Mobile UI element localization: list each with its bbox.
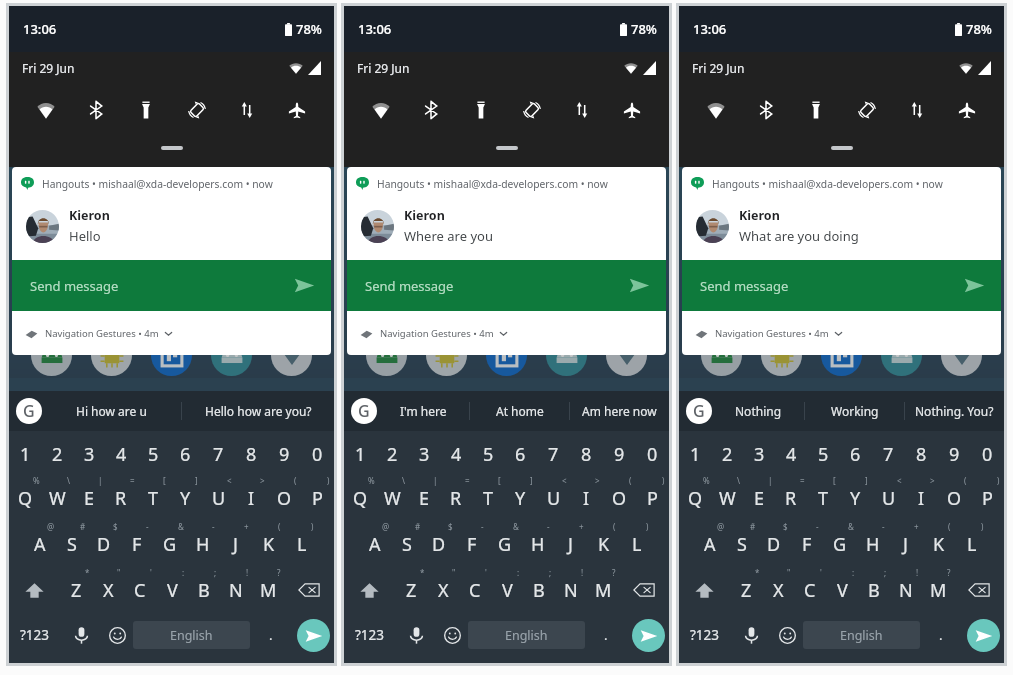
button[interactable]: Emoji [437,607,468,663]
button[interactable]: Auto-rotate [181,94,213,126]
button[interactable]: ) [971,469,1004,515]
button[interactable]: Bluetooth [750,94,782,126]
button[interactable]: ? [252,561,284,607]
button[interactable]: = [775,469,807,515]
button[interactable]: App shortcut [426,335,467,376]
button[interactable]: 3 [73,431,105,469]
button[interactable]: . [920,607,962,663]
button[interactable]: 1 [9,431,41,469]
button[interactable]: ] [504,469,537,515]
button[interactable]: 1 [679,431,711,469]
button[interactable]: Shift [9,561,60,607]
button[interactable]: English [468,621,585,649]
button[interactable]: 2 [711,431,743,469]
button[interactable]: Flashlight [465,94,497,126]
button[interactable]: & [153,515,186,561]
button[interactable]: \ [711,469,743,515]
button[interactable]: App shortcut [546,335,587,376]
button[interactable]: App shortcut [941,335,982,376]
button[interactable]: * [60,561,92,607]
button[interactable]: Google [686,398,712,424]
button[interactable]: ' [124,561,156,607]
button[interactable]: = [105,469,137,515]
button[interactable]: 5 [807,431,839,469]
button[interactable]: # [726,515,758,561]
button[interactable]: % [344,469,376,515]
button[interactable]: Bluetooth [80,94,112,126]
button[interactable]: [ [807,469,839,515]
button[interactable]: Auto-rotate [851,94,883,126]
button[interactable]: ; [523,561,555,607]
button[interactable]: 7 [872,431,905,469]
button[interactable]: ( [587,515,620,561]
button[interactable]: ] [839,469,872,515]
button[interactable]: 0 [636,431,669,469]
button[interactable]: Bluetooth [415,94,447,126]
button[interactable]: 8 [905,431,938,469]
button[interactable]: ( [922,515,955,561]
button[interactable]: < [872,469,905,515]
button[interactable]: Send message [347,260,666,311]
button[interactable]: # [391,515,423,561]
button[interactable]: - [186,515,219,561]
button[interactable]: App shortcut [821,335,862,376]
button[interactable]: ( [252,515,285,561]
button[interactable]: Mobile data [566,94,598,126]
button[interactable]: ' [794,561,826,607]
button[interactable]: 3 [743,431,775,469]
button[interactable]: ] [169,469,202,515]
button[interactable]: + [554,515,587,561]
button[interactable]: - [455,515,488,561]
button[interactable]: @ [359,515,391,561]
button[interactable]: * [395,561,427,607]
button[interactable]: Navigation Gestures • 4m [347,311,666,355]
button[interactable]: 4 [105,431,137,469]
button[interactable]: Shift [679,561,730,607]
button[interactable]: " [92,561,124,607]
button[interactable]: & [823,515,856,561]
button[interactable]: . [250,607,292,663]
button[interactable]: | [743,469,775,515]
button[interactable]: 1 [344,431,376,469]
button[interactable]: 7 [537,431,570,469]
button[interactable]: ? [587,561,619,607]
button[interactable]: 6 [169,431,202,469]
button[interactable]: Wi-Fi [700,94,732,126]
button[interactable]: Send message [12,260,331,311]
button[interactable]: Emoji [772,607,803,663]
button[interactable]: Backspace [284,561,334,607]
button[interactable]: " [427,561,459,607]
button[interactable]: > [235,469,268,515]
button[interactable]: Send message [682,260,1001,311]
button[interactable]: > [570,469,603,515]
button[interactable]: | [408,469,440,515]
button[interactable]: App shortcut [701,335,742,376]
button[interactable]: 6 [839,431,872,469]
button[interactable]: * [730,561,762,607]
button[interactable]: & [488,515,521,561]
button[interactable]: 8 [235,431,268,469]
button[interactable]: < [202,469,235,515]
button[interactable]: Hello how are you? [182,391,334,431]
button[interactable]: ?123 [679,607,730,663]
button[interactable]: App shortcut [761,335,802,376]
button[interactable]: : [826,561,858,607]
button[interactable]: \ [41,469,73,515]
button[interactable]: ?123 [9,607,60,663]
button[interactable]: English [133,621,250,649]
button[interactable]: Voice input [60,607,102,663]
button[interactable]: | [73,469,105,515]
button[interactable]: Hi how are u [42,391,181,431]
button[interactable]: ! [555,561,587,607]
button[interactable]: ? [922,561,954,607]
button[interactable]: ( [938,469,971,515]
button[interactable]: - [790,515,823,561]
button[interactable]: : [156,561,188,607]
button[interactable]: Airplane mode [616,94,648,126]
button[interactable]: $ [88,515,120,561]
button[interactable]: Expand quick settings [496,146,518,150]
button[interactable]: App shortcut [486,335,527,376]
button[interactable]: 7 [202,431,235,469]
button[interactable]: @ [694,515,726,561]
button[interactable]: Expand quick settings [161,146,183,150]
